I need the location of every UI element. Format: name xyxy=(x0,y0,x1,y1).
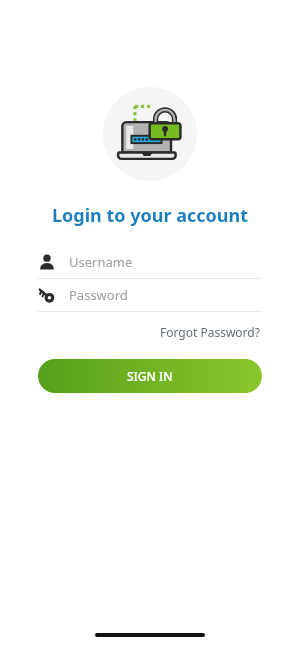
staticText: SIGN IN xyxy=(127,368,173,384)
button[interactable]: Username xyxy=(38,246,262,278)
staticText: Forgot Password? xyxy=(160,324,260,340)
button[interactable]: Forgot Password? xyxy=(158,321,262,343)
button[interactable]: SIGN IN xyxy=(38,359,262,393)
button[interactable]: Password xyxy=(38,279,262,311)
staticText: Login to your account xyxy=(52,203,248,228)
staticText: Password xyxy=(69,286,128,304)
staticText: Username xyxy=(69,253,133,271)
